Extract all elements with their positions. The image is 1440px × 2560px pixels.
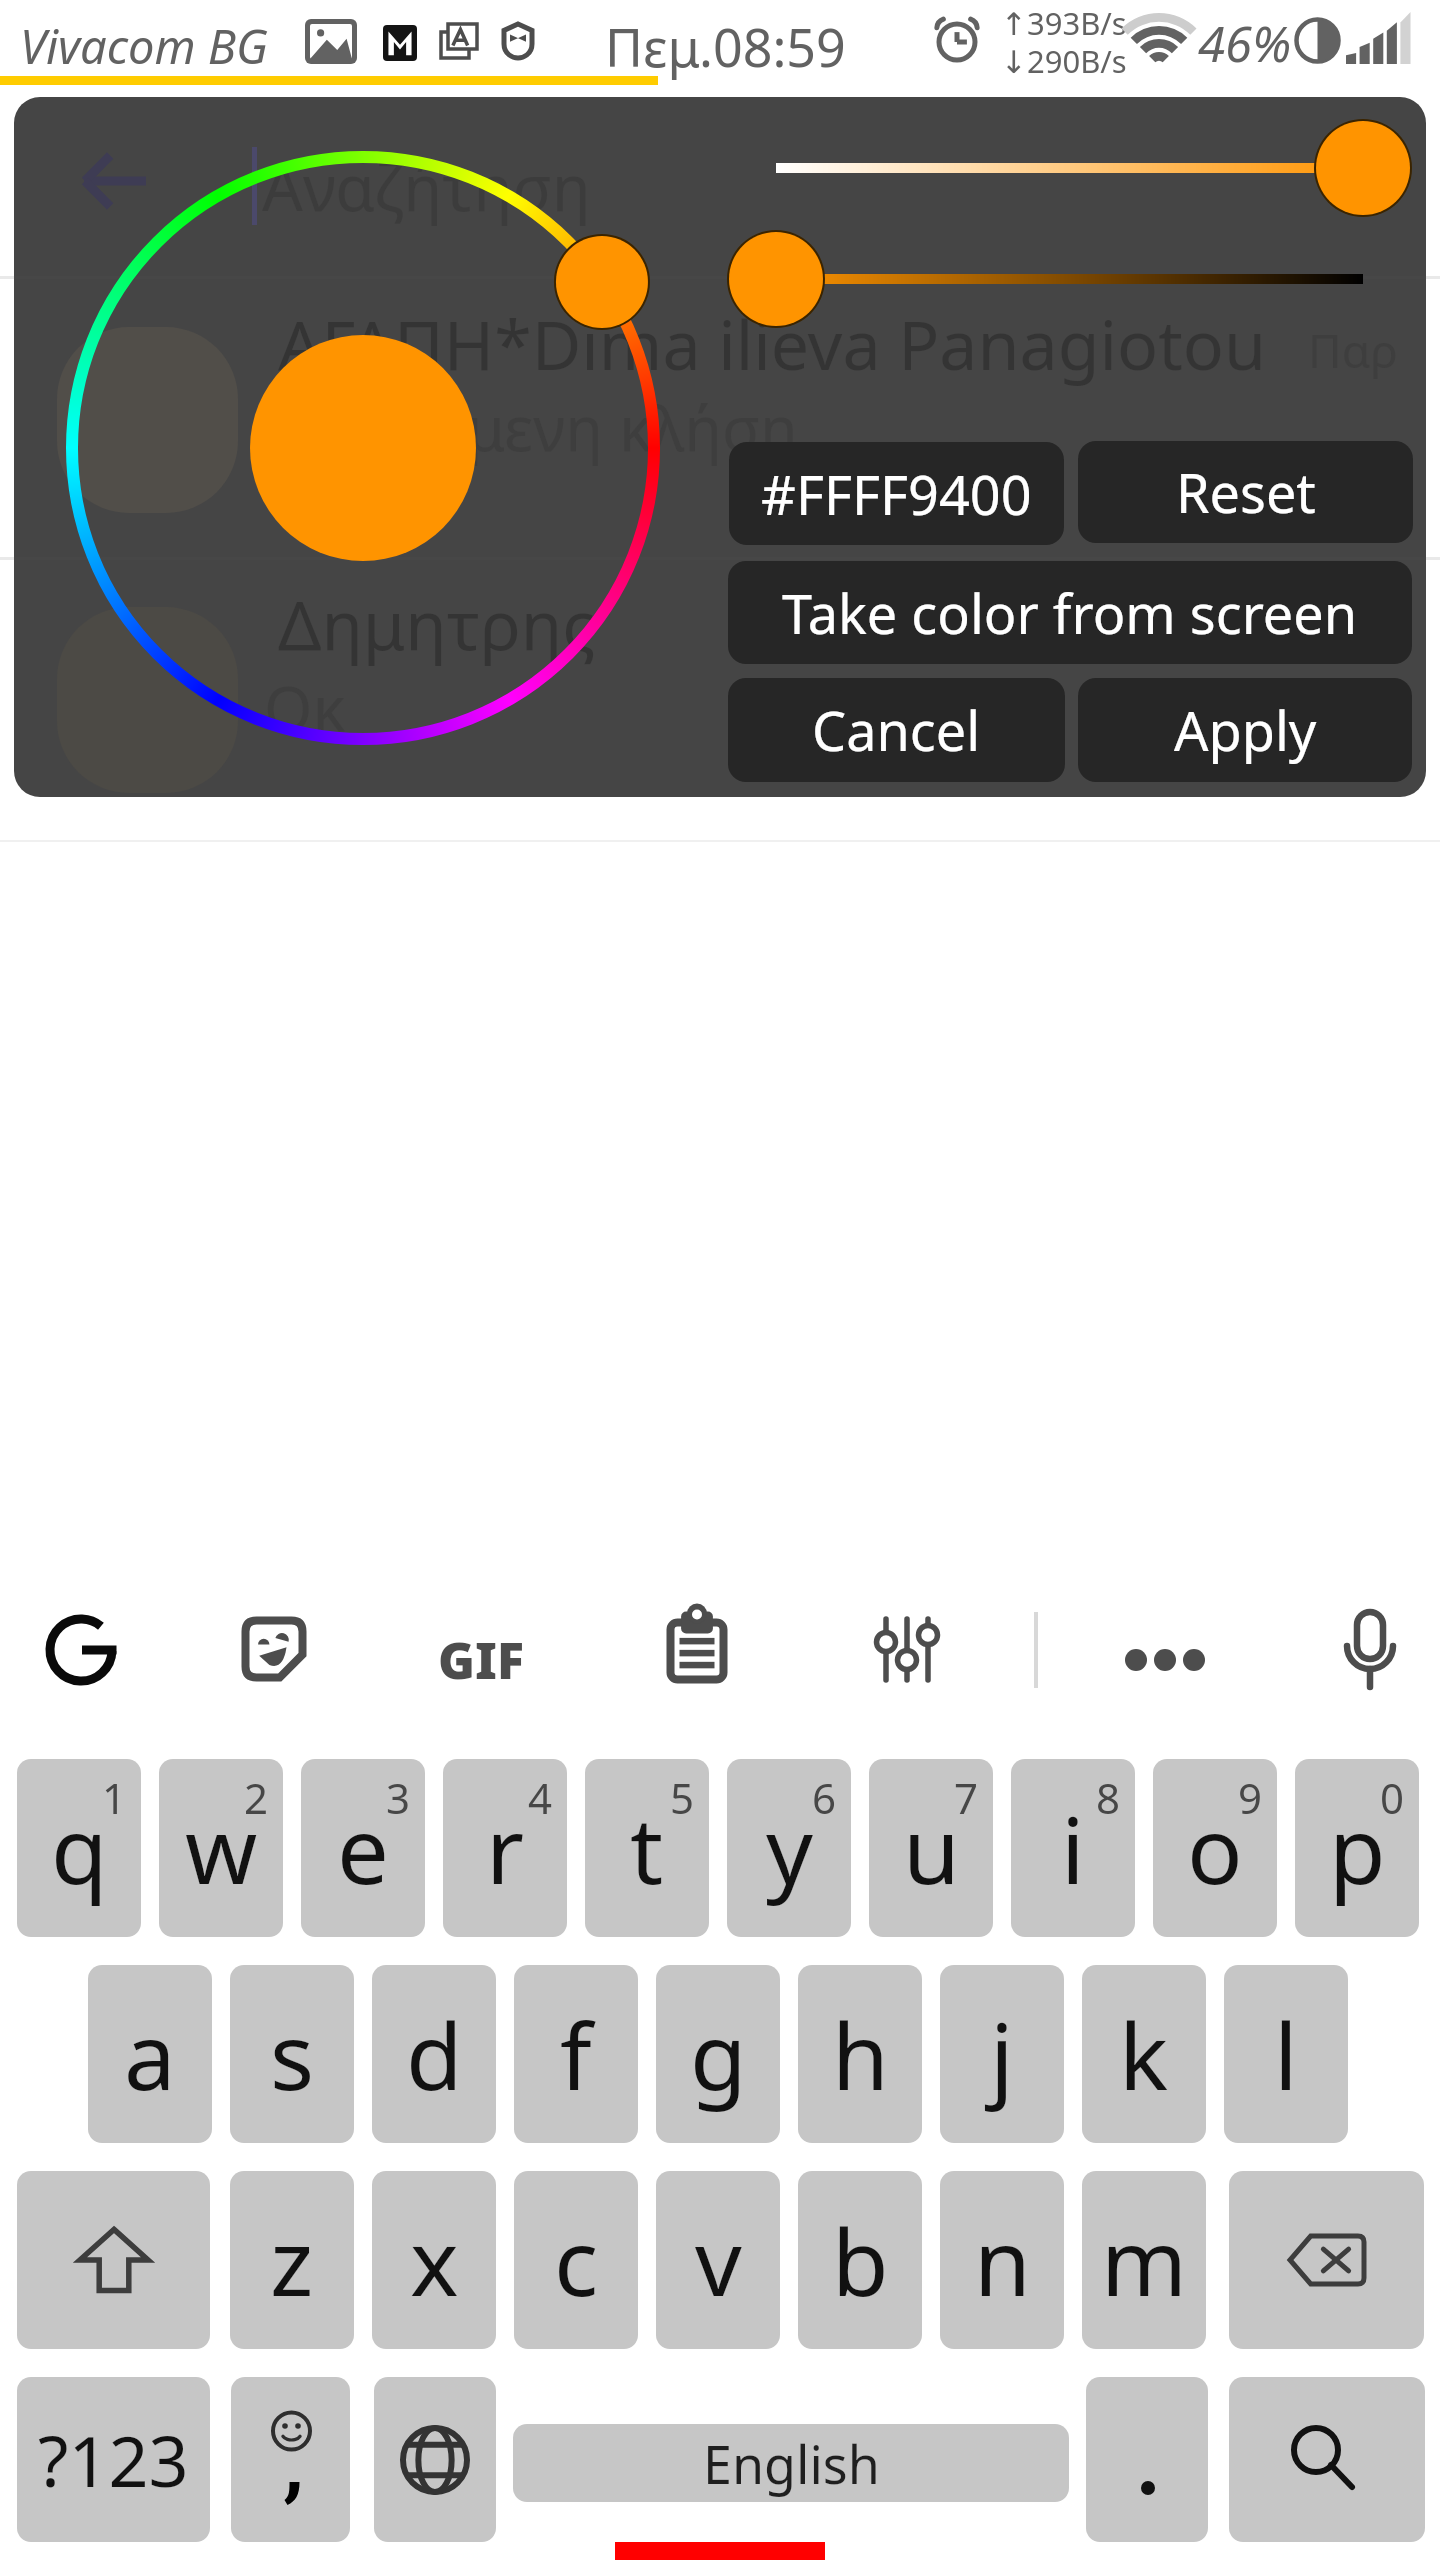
button[interactable]: y	[727, 1759, 851, 1937]
button[interactable]: l	[1224, 1965, 1348, 2143]
staticText: v	[695, 2198, 742, 2323]
button[interactable]: v	[656, 2171, 780, 2349]
button[interactable]: Apply	[1078, 678, 1412, 782]
button[interactable]: p	[1295, 1759, 1419, 1937]
button[interactable]: Period	[1086, 2377, 1208, 2542]
staticText: Δημητρης	[278, 577, 596, 670]
button[interactable]: d	[372, 1965, 496, 2143]
button[interactable]: c	[514, 2171, 638, 2349]
staticText: p	[1329, 1786, 1386, 1911]
staticText: w	[185, 1786, 258, 1911]
staticText: x	[410, 2198, 459, 2323]
staticText: 1	[102, 1769, 127, 1826]
button[interactable]: Shift	[17, 2171, 210, 2349]
button[interactable]: Settings	[852, 1595, 962, 1705]
staticText: b	[832, 2198, 889, 2323]
staticText: ΑΓΑΠΗ*Dima ilieva Panagiotou (Το…	[278, 297, 1268, 390]
button[interactable]: Backspace	[1229, 2171, 1424, 2349]
staticText: 5	[670, 1769, 695, 1826]
staticText: ↑393B/s	[1001, 2, 1127, 44]
staticText: e	[337, 1786, 389, 1911]
staticText: ↓290B/s	[1001, 40, 1127, 82]
staticText: Reset	[1176, 455, 1316, 529]
staticText: 7	[954, 1769, 979, 1826]
staticText: h	[832, 1992, 889, 2117]
button[interactable]: s	[230, 1965, 354, 2143]
button[interactable]: Take color from screen	[728, 561, 1412, 664]
button[interactable]: i	[1011, 1759, 1135, 1937]
button[interactable]: x	[372, 2171, 496, 2349]
button[interactable]: Cancel	[728, 678, 1065, 782]
staticText: i	[1061, 1786, 1085, 1911]
staticText: #FFFF9400	[761, 457, 1032, 531]
staticText: t	[630, 1786, 664, 1911]
staticText: f	[560, 1992, 592, 2117]
staticText: Vivacom BG	[20, 14, 268, 78]
staticText: j	[990, 1992, 1014, 2117]
staticText: 9	[1238, 1769, 1263, 1826]
staticText: g	[690, 1992, 747, 2117]
staticText: ?123	[38, 2412, 189, 2507]
button[interactable]: Reset	[1078, 441, 1413, 543]
staticText: Πεμ.08:59	[605, 11, 846, 82]
staticText: 4	[528, 1769, 553, 1826]
staticText: Apply	[1174, 693, 1317, 767]
staticText: Εξερχόμενη κλήση	[264, 385, 798, 469]
staticText: y	[766, 1786, 813, 1911]
staticText: a	[124, 1992, 176, 2117]
button[interactable]: t	[585, 1759, 709, 1937]
button[interactable]: Emoji and comma	[231, 2377, 350, 2542]
button[interactable]: u	[869, 1759, 993, 1937]
button[interactable]: n	[940, 2171, 1064, 2349]
button[interactable]: k	[1082, 1965, 1206, 2143]
button[interactable]: z	[230, 2171, 354, 2349]
button[interactable]: Back	[58, 135, 170, 227]
button[interactable]: e	[301, 1759, 425, 1937]
staticText: k	[1119, 1992, 1169, 2117]
button[interactable]: ?123	[17, 2377, 210, 2542]
staticText: m	[1101, 2198, 1188, 2323]
button[interactable]: Clipboard	[642, 1592, 752, 1702]
staticText: 3	[386, 1769, 411, 1826]
button[interactable]: Stickers	[219, 1594, 329, 1704]
staticText: l	[1274, 1992, 1298, 2117]
staticText: Cancel	[812, 693, 981, 767]
staticText: Οκ	[264, 665, 346, 749]
button[interactable]: q	[17, 1759, 141, 1937]
staticText: 46%	[1198, 10, 1292, 77]
staticText: n	[974, 2198, 1031, 2323]
button[interactable]: Voice input	[1315, 1594, 1425, 1704]
staticText: s	[270, 1992, 315, 2117]
button[interactable]: More options	[1110, 1605, 1220, 1715]
button[interactable]: m	[1082, 2171, 1206, 2349]
staticText: c	[554, 2198, 599, 2323]
button[interactable]: h	[798, 1965, 922, 2143]
button[interactable]: o	[1153, 1759, 1277, 1937]
staticText: 0	[1380, 1769, 1405, 1826]
button[interactable]: a	[88, 1965, 212, 2143]
button[interactable]: GIF	[426, 1605, 536, 1715]
staticText: r	[486, 1786, 524, 1911]
button[interactable]: j	[940, 1965, 1064, 2143]
staticText: 6	[812, 1769, 837, 1826]
button[interactable]: w	[159, 1759, 283, 1937]
staticText: d	[406, 1992, 463, 2117]
staticText: u	[903, 1786, 960, 1911]
button[interactable]: f	[514, 1965, 638, 2143]
button[interactable]: Change language	[374, 2377, 496, 2542]
staticText: q	[51, 1786, 108, 1911]
button[interactable]: b	[798, 2171, 922, 2349]
button[interactable]: g	[656, 1965, 780, 2143]
button[interactable]: #FFFF9400	[729, 442, 1064, 545]
staticText: English	[703, 2428, 880, 2499]
button[interactable]: English	[513, 2424, 1069, 2502]
button[interactable]: Search	[1229, 2377, 1425, 2542]
staticText: z	[270, 2198, 314, 2323]
button[interactable]: Google search	[26, 1595, 136, 1705]
staticText: o	[1187, 1786, 1243, 1911]
staticText: 2	[244, 1769, 269, 1826]
staticText: 8	[1096, 1769, 1121, 1826]
staticText: GIF	[438, 1626, 524, 1694]
button[interactable]: r	[443, 1759, 567, 1937]
